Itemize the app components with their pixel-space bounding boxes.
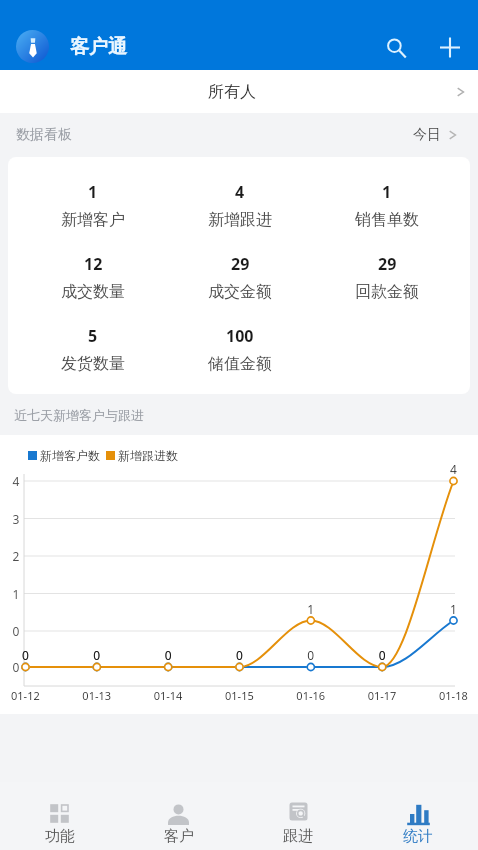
staticText: 成交数量: [61, 282, 125, 302]
button[interactable]: 今日: [405, 122, 466, 148]
staticText: 新增客户: [61, 210, 125, 230]
button[interactable]: 统计: [358, 802, 478, 850]
staticText: 储值金额: [208, 354, 272, 374]
staticText: 功能: [45, 827, 75, 846]
staticText: 新增跟进: [208, 210, 272, 230]
staticText: 1: [88, 181, 98, 203]
staticText: 回款金额: [355, 282, 419, 302]
staticText: 100: [226, 325, 254, 347]
staticText: 统计: [403, 827, 433, 846]
button[interactable]: 功能: [0, 802, 119, 850]
staticText: 发货数量: [61, 354, 125, 374]
staticText: 5: [88, 325, 98, 347]
button[interactable]: 跟进: [238, 802, 358, 850]
staticText: 所有人: [208, 82, 256, 102]
staticText: 今日: [413, 126, 441, 144]
staticText: 29: [378, 253, 397, 275]
staticText: 4: [235, 181, 245, 203]
staticText: 近七天新增客户与跟进: [14, 407, 144, 423]
button[interactable]: Add: [426, 23, 473, 70]
staticText: 客户: [164, 827, 194, 846]
staticText: 数据看板: [16, 126, 72, 144]
button[interactable]: 客户: [119, 802, 238, 850]
button[interactable]: Search: [379, 23, 426, 70]
staticText: 29: [231, 253, 250, 275]
button[interactable]: 所有人: [0, 70, 478, 113]
staticText: 客户通: [70, 35, 127, 59]
staticText: 12: [84, 253, 103, 275]
staticText: 成交金额: [208, 282, 272, 302]
staticText: 1: [382, 181, 392, 203]
staticText: 跟进: [283, 827, 313, 846]
staticText: 销售单数: [355, 210, 419, 230]
